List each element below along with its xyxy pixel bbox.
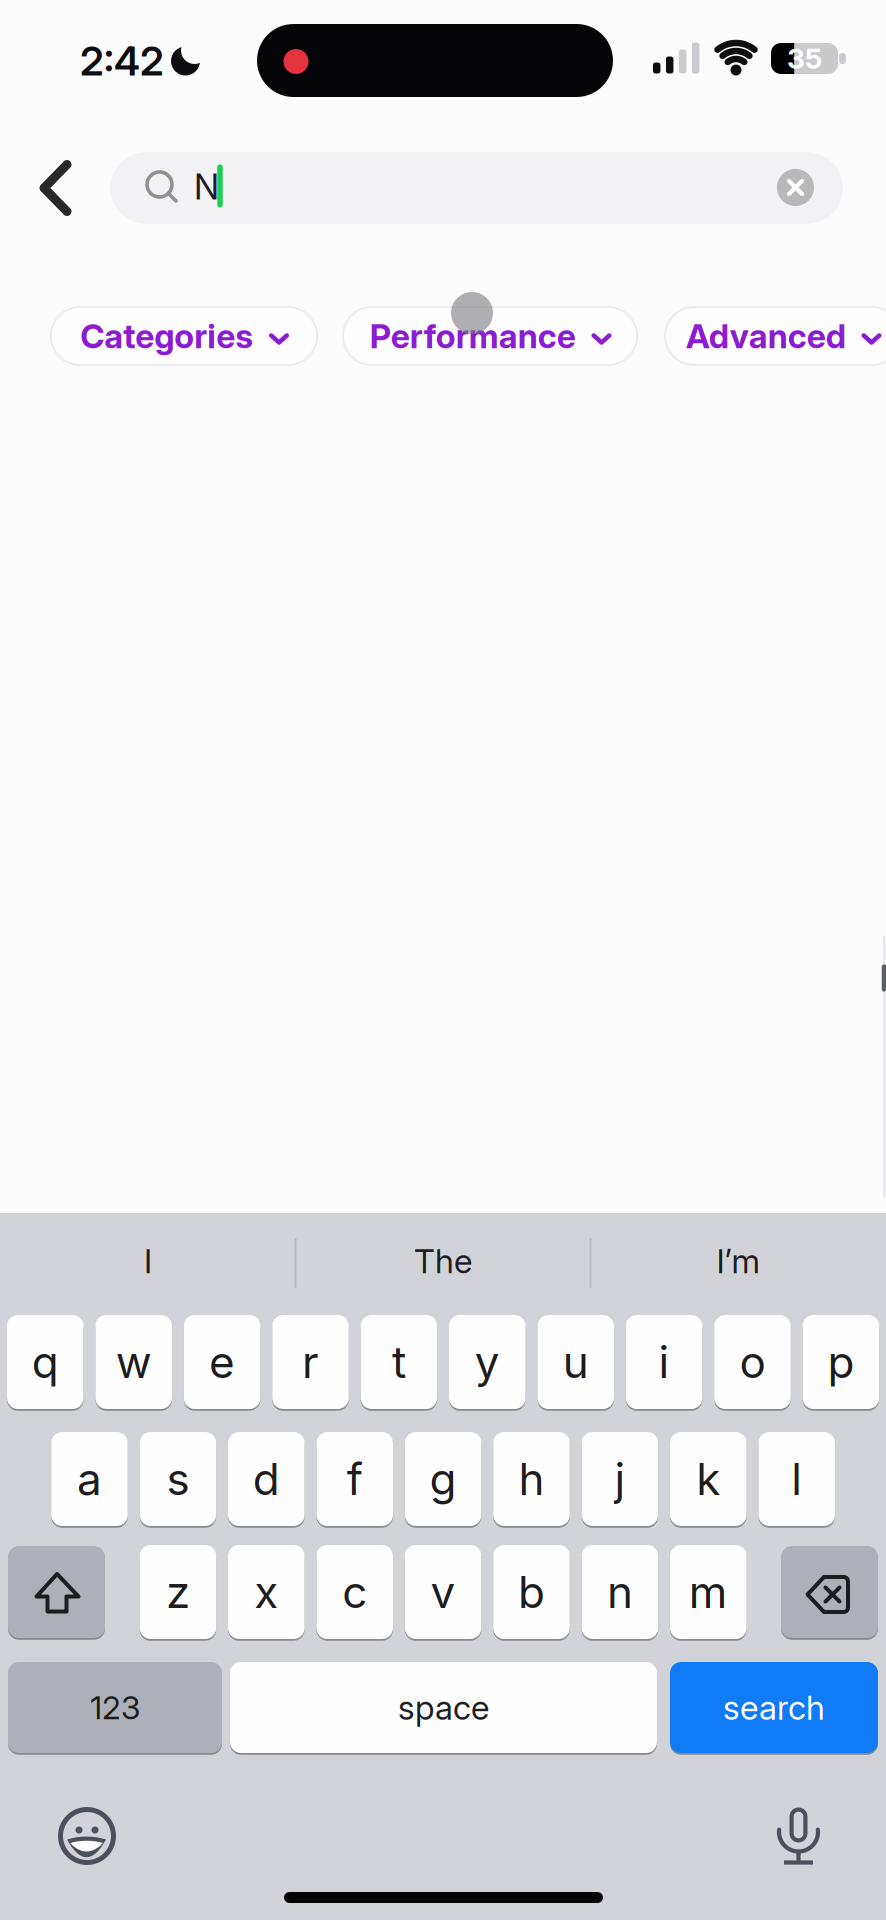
button[interactable]: I — [8, 1223, 288, 1299]
staticText: q — [32, 1336, 59, 1388]
button[interactable]: k — [670, 1432, 747, 1526]
staticText: l — [791, 1453, 802, 1505]
staticText: t — [392, 1336, 406, 1388]
button[interactable]: e — [184, 1315, 260, 1409]
staticText: s — [166, 1453, 189, 1505]
button[interactable]: a — [51, 1432, 128, 1526]
button[interactable]: s — [140, 1432, 216, 1526]
button[interactable]: w — [95, 1315, 172, 1409]
button[interactable]: g — [405, 1432, 481, 1526]
button[interactable]: i — [626, 1315, 702, 1409]
button[interactable]: m — [670, 1545, 747, 1639]
staticText: v — [431, 1566, 456, 1618]
button[interactable]: l — [758, 1432, 835, 1526]
staticText: N — [194, 167, 219, 207]
button[interactable]: c — [316, 1545, 393, 1639]
staticText: search — [723, 1688, 825, 1727]
button[interactable]: Emoji — [57, 1806, 117, 1866]
button[interactable]: y — [449, 1315, 526, 1409]
staticText: p — [827, 1336, 854, 1388]
button[interactable]: p — [803, 1315, 879, 1409]
staticText: r — [302, 1336, 319, 1388]
staticText: x — [254, 1566, 278, 1618]
button[interactable]: Back — [41, 163, 71, 213]
button[interactable]: The — [303, 1223, 583, 1299]
button[interactable]: Clear text — [777, 169, 814, 206]
staticText: 35 — [787, 42, 822, 75]
staticText: o — [739, 1336, 765, 1388]
staticText: I’m — [716, 1241, 759, 1281]
staticText: The — [414, 1241, 472, 1281]
button[interactable]: o — [714, 1315, 791, 1409]
staticText: k — [696, 1453, 720, 1505]
button[interactable]: h — [493, 1432, 570, 1526]
staticText: m — [689, 1566, 728, 1618]
button[interactable]: search — [670, 1662, 878, 1753]
staticText: Advanced — [686, 316, 846, 356]
staticText: y — [475, 1336, 500, 1388]
staticText: n — [607, 1566, 633, 1618]
staticText: w — [116, 1336, 152, 1388]
button[interactable]: n — [582, 1545, 658, 1639]
staticText: c — [342, 1566, 367, 1618]
button[interactable]: r — [272, 1315, 349, 1409]
button[interactable]: Performance — [342, 306, 638, 366]
staticText: Performance — [370, 316, 576, 356]
button[interactable]: space — [230, 1662, 657, 1753]
button[interactable]: x — [228, 1545, 305, 1639]
staticText: e — [209, 1336, 235, 1388]
button[interactable]: j — [582, 1432, 658, 1526]
staticText: d — [253, 1453, 280, 1505]
staticText: space — [398, 1688, 489, 1727]
staticText: g — [430, 1453, 457, 1505]
button[interactable]: v — [405, 1545, 481, 1639]
staticText: a — [77, 1453, 102, 1505]
staticText: 123 — [90, 1689, 140, 1726]
button[interactable]: z — [140, 1545, 216, 1639]
button[interactable]: t — [361, 1315, 437, 1409]
button[interactable]: Shift — [8, 1546, 105, 1638]
staticText: u — [563, 1336, 589, 1388]
button[interactable]: d — [228, 1432, 305, 1526]
staticText: j — [614, 1453, 625, 1505]
button[interactable]: b — [493, 1545, 570, 1639]
button[interactable]: Advanced — [664, 306, 886, 366]
button[interactable]: Dictation — [767, 1804, 827, 1866]
button[interactable]: f — [316, 1432, 393, 1526]
staticText: I — [144, 1241, 152, 1281]
staticText: h — [518, 1453, 544, 1505]
button[interactable]: u — [537, 1315, 614, 1409]
staticText: z — [166, 1566, 190, 1618]
staticText: 2:42 — [80, 37, 164, 85]
staticText: f — [347, 1453, 363, 1505]
button[interactable]: 123 — [8, 1662, 222, 1753]
button[interactable]: Categories — [50, 306, 318, 366]
staticText: Categories — [80, 316, 253, 356]
button[interactable]: I’m — [598, 1223, 878, 1299]
button[interactable]: Delete — [781, 1546, 878, 1638]
staticText: b — [518, 1566, 545, 1618]
staticText: i — [659, 1336, 670, 1388]
button[interactable]: q — [7, 1315, 84, 1409]
